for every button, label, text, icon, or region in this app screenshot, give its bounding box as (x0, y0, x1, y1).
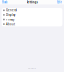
button[interactable]: General (2, 8, 62, 13)
staticText: Settings (26, 0, 37, 4)
staticText: Edit (57, 0, 62, 4)
button[interactable]: Edit (57, 0, 64, 4)
staticText: Privacy (6, 18, 14, 21)
staticText: General (6, 8, 17, 12)
button[interactable]: Back (0, 0, 7, 4)
button[interactable]: Display (2, 13, 62, 17)
button[interactable]: About (2, 22, 62, 26)
staticText: About (6, 22, 15, 26)
staticText: Version 1.0 (28, 67, 36, 69)
button[interactable]: Privacy (2, 17, 62, 22)
staticText: Display (6, 13, 15, 17)
staticText: Back (2, 0, 7, 4)
